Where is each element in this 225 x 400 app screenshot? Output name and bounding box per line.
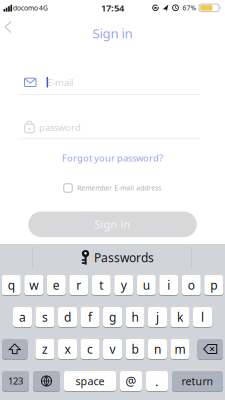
- button[interactable]: y: [114, 274, 133, 295]
- staticText: Sign in: [94, 217, 130, 231]
- button[interactable]: p: [204, 274, 223, 295]
- button[interactable]: .: [146, 370, 168, 391]
- button[interactable]: space: [64, 370, 116, 391]
- button[interactable]: q: [2, 274, 21, 295]
- staticText: Sign in: [92, 24, 132, 42]
- staticText: .: [155, 372, 159, 390]
- button[interactable]: j: [148, 306, 167, 327]
- staticText: c: [87, 341, 93, 357]
- button[interactable]: b: [125, 338, 144, 359]
- staticText: 123: [8, 375, 23, 387]
- button[interactable]: a: [13, 306, 32, 327]
- staticText: x: [64, 341, 70, 357]
- button[interactable]: n: [148, 338, 167, 359]
- button[interactable]: Next keyboard: [33, 370, 60, 391]
- button[interactable]: Sign in: [28, 212, 197, 237]
- staticText: @: [125, 373, 136, 389]
- staticText: g: [109, 309, 116, 325]
- button[interactable]: k: [170, 306, 189, 327]
- staticText: password: [39, 121, 81, 134]
- staticText: n: [154, 341, 161, 357]
- button[interactable]: g: [103, 306, 122, 327]
- button[interactable]: @: [120, 370, 142, 391]
- button[interactable]: Delete: [197, 338, 223, 359]
- staticText: docomo: [13, 4, 38, 12]
- button[interactable]: i: [159, 274, 178, 295]
- staticText: 17:54: [101, 2, 124, 14]
- staticText: Forgot your password?: [62, 152, 163, 164]
- button[interactable]: z: [35, 338, 54, 359]
- staticText: space: [75, 374, 104, 388]
- button[interactable]: Shift: [2, 338, 27, 359]
- staticText: Remember E-mail address: [77, 184, 161, 192]
- button[interactable]: Passwords: [81, 249, 154, 265]
- staticText: 4G: [39, 4, 48, 12]
- staticText: y: [121, 277, 127, 293]
- button[interactable]: u: [137, 274, 156, 295]
- button[interactable]: s: [35, 306, 54, 327]
- staticText: b: [131, 341, 138, 357]
- staticText: j: [156, 309, 159, 325]
- staticText: E-mail: [47, 76, 73, 88]
- staticText: t: [99, 277, 103, 293]
- staticText: m: [174, 341, 185, 357]
- button[interactable]: t: [92, 274, 111, 295]
- staticText: v: [109, 341, 115, 357]
- button[interactable]: v: [103, 338, 122, 359]
- button[interactable]: w: [24, 274, 43, 295]
- staticText: l: [201, 309, 204, 325]
- button[interactable]: x: [58, 338, 77, 359]
- button[interactable]: c: [80, 338, 99, 359]
- staticText: return: [181, 374, 213, 388]
- button[interactable]: o: [182, 274, 201, 295]
- staticText: w: [29, 277, 38, 293]
- button[interactable]: return: [172, 370, 223, 391]
- button[interactable]: Remember E-mail address: [64, 184, 161, 192]
- staticText: z: [42, 341, 48, 357]
- staticText: s: [42, 309, 48, 325]
- button[interactable]: e: [47, 274, 66, 295]
- button[interactable]: m: [170, 338, 189, 359]
- staticText: u: [143, 277, 150, 293]
- staticText: i: [167, 277, 170, 293]
- button[interactable]: Forgot your password?: [62, 152, 163, 164]
- staticText: h: [131, 309, 138, 325]
- staticText: e: [53, 277, 60, 293]
- staticText: o: [188, 277, 195, 293]
- button[interactable]: l: [193, 306, 212, 327]
- staticText: 67%: [182, 4, 196, 12]
- staticText: k: [177, 309, 183, 325]
- staticText: p: [210, 277, 217, 293]
- staticText: a: [19, 309, 26, 325]
- staticText: Passwords: [94, 249, 154, 265]
- staticText: f: [88, 309, 92, 325]
- button[interactable]: Back: [4, 20, 18, 36]
- staticText: r: [76, 277, 81, 293]
- staticText: d: [64, 309, 71, 325]
- button[interactable]: d: [58, 306, 77, 327]
- button[interactable]: h: [125, 306, 144, 327]
- staticText: q: [8, 277, 15, 293]
- button[interactable]: 123: [2, 370, 29, 391]
- button[interactable]: f: [80, 306, 99, 327]
- button[interactable]: r: [69, 274, 88, 295]
